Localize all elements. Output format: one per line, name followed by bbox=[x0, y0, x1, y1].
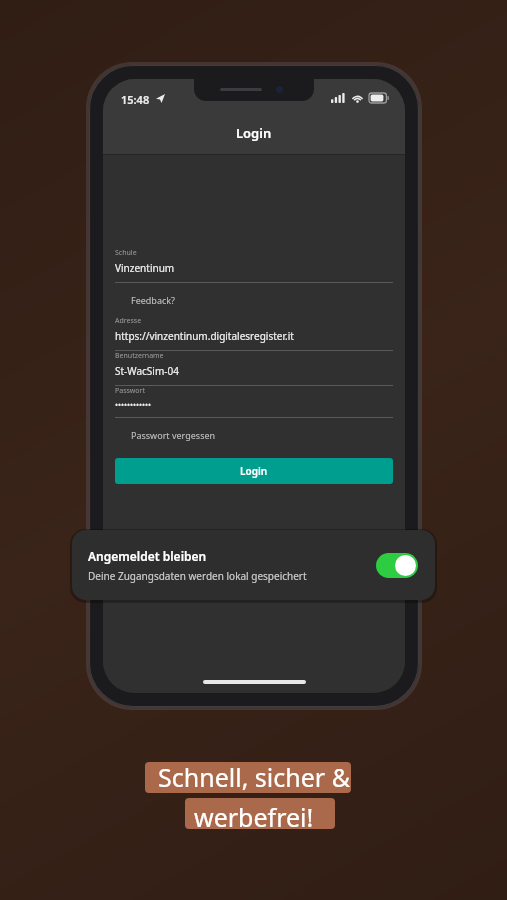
staticText: Login bbox=[240, 464, 268, 478]
button[interactable]: Adresse bbox=[115, 316, 393, 351]
button[interactable]: Passwort vergessen bbox=[115, 418, 393, 451]
staticText: Benutzername bbox=[115, 351, 164, 361]
button[interactable]: Benutzername bbox=[115, 351, 393, 386]
button[interactable]: Schule bbox=[115, 248, 393, 283]
button[interactable]: Passwort bbox=[115, 386, 393, 418]
button[interactable]: Angemeldet bleiben bbox=[72, 530, 435, 600]
staticText: •••••••••••• bbox=[115, 399, 152, 410]
staticText: Deine Zugangsdaten werden lokal gespeich… bbox=[88, 569, 307, 583]
staticText: Schnell, sicher & bbox=[158, 760, 350, 794]
staticText: Feedback? bbox=[131, 294, 175, 306]
staticText: Adresse bbox=[115, 316, 142, 326]
staticText: werbefrei! bbox=[194, 800, 314, 834]
staticText: Login bbox=[236, 124, 272, 142]
staticText: Vinzentinum bbox=[115, 261, 175, 275]
staticText: Passwort bbox=[115, 386, 146, 396]
staticText: St-WacSim-04 bbox=[115, 364, 179, 378]
staticText: https://vinzentinum.digitalesregister.it bbox=[115, 329, 294, 343]
staticText: Schule bbox=[115, 248, 137, 258]
button[interactable]: Feedback? bbox=[115, 283, 393, 316]
staticText: Angemeldet bleiben bbox=[88, 548, 207, 564]
staticText: Passwort vergessen bbox=[131, 429, 216, 441]
button[interactable]: Angemeldet bleiben umschalten bbox=[376, 553, 418, 578]
button[interactable]: Login bbox=[115, 458, 393, 484]
staticText: 15:48 bbox=[121, 92, 150, 107]
